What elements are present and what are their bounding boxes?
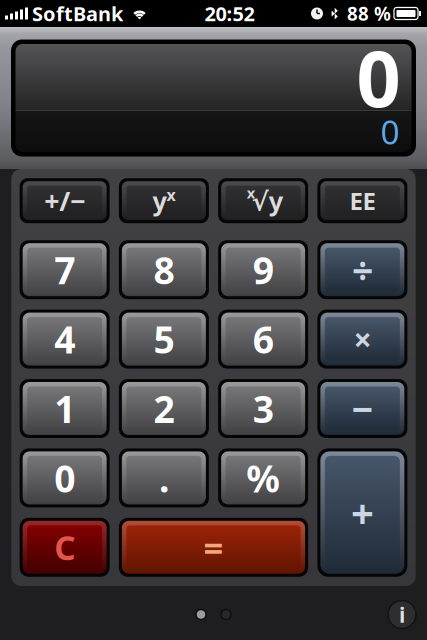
staticText: = — [203, 524, 223, 570]
staticText: 2 — [153, 384, 174, 433]
button[interactable]: EE — [317, 178, 407, 223]
button[interactable]: Info — [380, 592, 424, 636]
staticText: 3 — [253, 384, 274, 433]
button[interactable]: 0 — [20, 448, 110, 507]
button[interactable]: 3 — [218, 379, 308, 438]
button[interactable]: Plus — [317, 448, 407, 577]
staticText: √y — [252, 184, 283, 217]
staticText: +/− — [44, 183, 85, 218]
staticText: − — [351, 384, 373, 433]
button[interactable]: Divide — [317, 240, 407, 299]
button[interactable]: 9 — [218, 240, 308, 299]
button[interactable]: 8 — [119, 240, 209, 299]
staticText: i — [399, 600, 405, 629]
button[interactable]: 7 — [20, 240, 110, 299]
staticText: 0 — [380, 109, 399, 154]
staticText: 8 — [153, 245, 174, 294]
button[interactable]: . — [119, 448, 209, 507]
button[interactable]: Minus — [317, 379, 407, 438]
button[interactable]: +/− — [20, 178, 110, 223]
staticText: 1 — [54, 384, 75, 433]
staticText: 4 — [54, 314, 75, 364]
button[interactable]: C — [20, 518, 110, 577]
staticText: y — [152, 184, 166, 217]
button[interactable]: = — [119, 518, 308, 577]
button[interactable]: 2 — [119, 379, 209, 438]
staticText: x — [247, 183, 255, 202]
staticText: 0 — [356, 26, 400, 128]
staticText: + — [351, 486, 374, 539]
staticText: × — [353, 318, 371, 360]
button[interactable]: x root of y — [218, 178, 308, 223]
staticText: EE — [349, 185, 375, 217]
staticText: 5 — [153, 314, 174, 364]
staticText: 9 — [253, 245, 274, 294]
staticText: ÷ — [352, 245, 373, 294]
button[interactable]: 4 — [20, 310, 110, 369]
button[interactable]: y to the power of x — [119, 178, 209, 223]
staticText: SoftBank — [32, 0, 123, 27]
staticText: 0 — [54, 453, 75, 503]
button[interactable]: Multiply — [317, 310, 407, 369]
staticText: 6 — [253, 314, 274, 364]
staticText: % — [246, 453, 280, 503]
staticText: x — [166, 184, 175, 205]
staticText: 88 % — [347, 1, 391, 26]
button[interactable]: 1 — [20, 379, 110, 438]
button[interactable]: 6 — [218, 310, 308, 369]
staticText: C — [54, 525, 75, 569]
staticText: . — [159, 453, 169, 503]
staticText: 7 — [54, 245, 75, 294]
button[interactable]: 5 — [119, 310, 209, 369]
staticText: 20:52 — [204, 0, 254, 27]
button[interactable]: % — [218, 448, 308, 507]
